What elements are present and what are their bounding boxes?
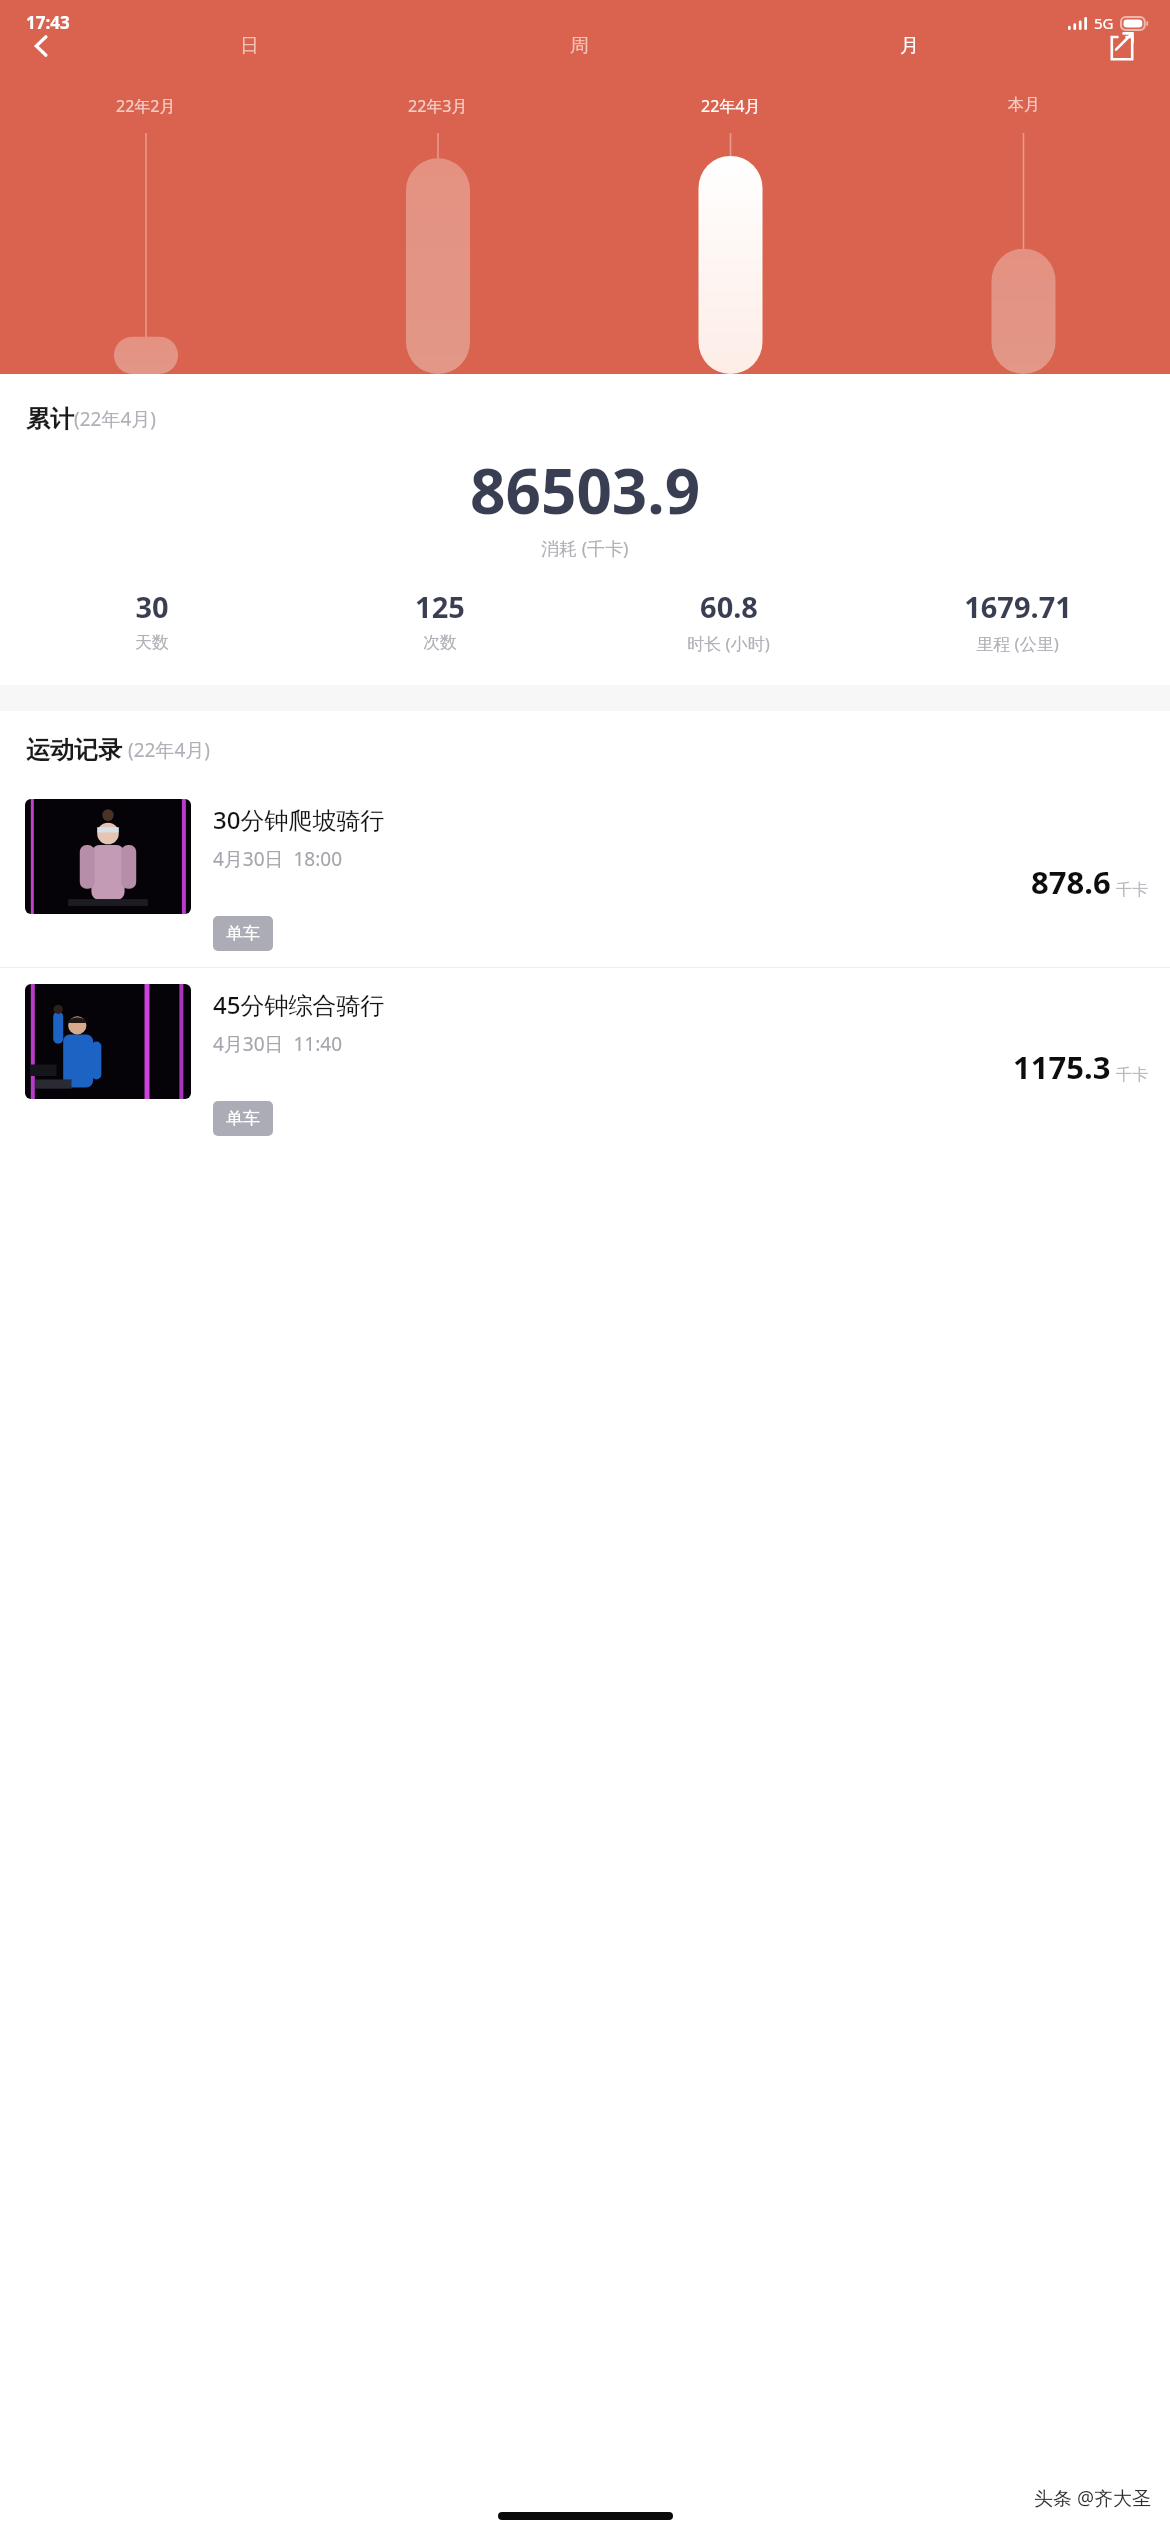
staticText: 30: [135, 587, 169, 626]
button[interactable]: 周: [414, 18, 744, 74]
button[interactable]: 125: [296, 587, 584, 653]
staticText: (22年4月): [74, 406, 157, 432]
staticText: 45分钟综合骑行: [213, 988, 385, 1021]
staticText: 5G: [1094, 13, 1114, 33]
staticText: 天数: [135, 632, 169, 653]
staticText: 累计: [26, 404, 74, 434]
button[interactable]: 月: [744, 18, 1074, 74]
staticText: 125: [415, 587, 465, 626]
staticText: 头条 @齐大圣: [1034, 2485, 1152, 2511]
staticText: 22年3月: [408, 95, 468, 117]
staticText: 4月30日 11:40: [213, 1031, 343, 1057]
staticText: 日: [240, 34, 259, 58]
button[interactable]: 45分钟综合骑行: [0, 968, 1170, 1152]
button[interactable]: 1679.71: [873, 587, 1162, 655]
staticText: 单车: [226, 923, 260, 944]
staticText: 878.6: [1031, 861, 1111, 903]
staticText: (22年4月): [128, 737, 211, 763]
staticText: 22年2月: [116, 95, 176, 117]
staticText: 22年4月: [701, 95, 761, 117]
staticText: 30分钟爬坡骑行: [213, 803, 385, 836]
staticText: 单车: [226, 1108, 260, 1129]
button[interactable]: Share: [1074, 18, 1170, 74]
staticText: 千卡: [1116, 880, 1148, 900]
staticText: 17:43: [26, 11, 70, 34]
button[interactable]: 日: [84, 18, 414, 74]
staticText: 4月30日 18:00: [213, 846, 343, 872]
staticText: 周: [570, 34, 589, 58]
staticText: 千卡: [1116, 1065, 1148, 1085]
button[interactable]: 30: [8, 587, 296, 653]
staticText: 时长 (小时): [687, 632, 770, 655]
button[interactable]: 30分钟爬坡骑行: [0, 783, 1170, 967]
staticText: 86503.9: [470, 448, 701, 532]
staticText: 消耗 (千卡): [541, 536, 629, 561]
staticText: 月: [900, 34, 919, 58]
staticText: 本月: [1008, 95, 1040, 115]
button[interactable]: Back: [0, 18, 84, 74]
staticText: 次数: [423, 632, 457, 653]
staticText: 里程 (公里): [976, 632, 1059, 655]
staticText: 1175.3: [1013, 1046, 1111, 1088]
button[interactable]: 60.8: [584, 587, 873, 655]
staticText: 运动记录: [26, 735, 122, 765]
staticText: 60.8: [700, 587, 758, 626]
staticText: 1679.71: [964, 587, 1072, 626]
